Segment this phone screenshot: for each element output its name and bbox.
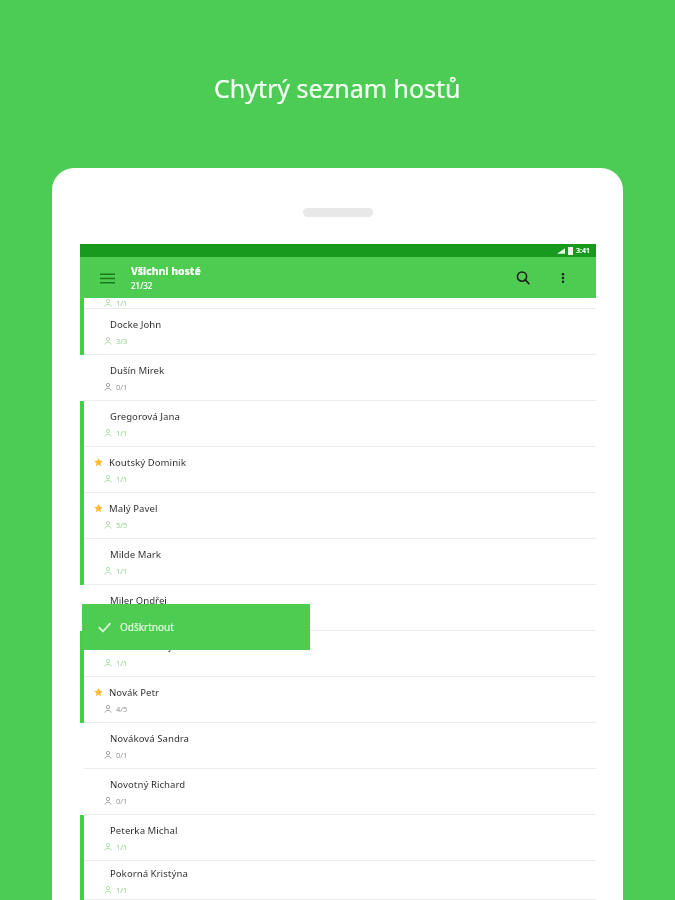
staticText: Novák Petr xyxy=(109,686,160,699)
button[interactable]: Odškrtnout xyxy=(82,604,310,650)
button[interactable]: Novák Petr xyxy=(80,677,596,723)
button[interactable]: Malý Pavel xyxy=(80,493,596,539)
button[interactable]: Gregorová Jana xyxy=(80,401,596,447)
staticText: 1/1 xyxy=(116,566,128,576)
staticText: Gregorová Jana xyxy=(110,410,180,423)
staticText: Milde Mark xyxy=(110,548,162,561)
button[interactable]: Peterka Michal xyxy=(80,815,596,861)
staticText: Malý Pavel xyxy=(109,502,158,515)
staticText: 21/32 xyxy=(131,280,153,291)
staticText: 4/5 xyxy=(116,704,128,714)
button[interactable]: Search xyxy=(508,263,538,293)
staticText: 1/1 xyxy=(116,298,128,308)
button[interactable]: Koutský Dominik xyxy=(80,447,596,493)
staticText: Pokorná Kristýna xyxy=(110,867,188,880)
button[interactable]: Nováková Sandra xyxy=(80,723,596,769)
staticText: Dušín Mirek xyxy=(110,364,165,377)
staticText: 3/3 xyxy=(116,336,128,346)
staticText: Chytrý seznam hostů xyxy=(214,71,461,105)
button[interactable]: Dušín Mirek xyxy=(80,355,596,401)
staticText: 3:41 xyxy=(576,246,590,256)
button[interactable]: Open navigation drawer xyxy=(94,265,120,291)
button[interactable]: Docke John xyxy=(80,309,596,355)
staticText: 1/1 xyxy=(116,474,128,484)
staticText: 1/1 xyxy=(116,842,128,852)
button[interactable]: Pokorná Kristýna xyxy=(80,861,596,900)
button[interactable]: Miler Ondřej xyxy=(80,585,596,631)
staticText: Docke John xyxy=(110,318,162,331)
staticText: Odškrtnout xyxy=(120,620,174,634)
staticText: 1/1 xyxy=(116,885,128,895)
button[interactable]: Novák Ondřej xyxy=(80,631,596,677)
button[interactable]: More options xyxy=(548,263,578,293)
staticText: Koutský Dominik xyxy=(109,456,186,469)
staticText: 0/1 xyxy=(116,750,128,760)
staticText: 5/5 xyxy=(116,520,128,530)
button[interactable]: Novotný Richard xyxy=(80,769,596,815)
staticText: Novák Ondřej xyxy=(109,640,172,653)
staticText: Peterka Michal xyxy=(110,824,178,837)
button[interactable]: Milde Mark xyxy=(80,539,596,585)
staticText: 0/1 xyxy=(116,796,128,806)
staticText: 1/1 xyxy=(116,428,128,438)
staticText: Miler Ondřej xyxy=(110,594,167,607)
staticText: Všichni hosté xyxy=(131,264,201,278)
staticText: Nováková Sandra xyxy=(110,732,190,745)
staticText: 0/1 xyxy=(116,382,128,392)
staticText: 1/1 xyxy=(116,658,128,668)
staticText: Novotný Richard xyxy=(110,778,186,791)
